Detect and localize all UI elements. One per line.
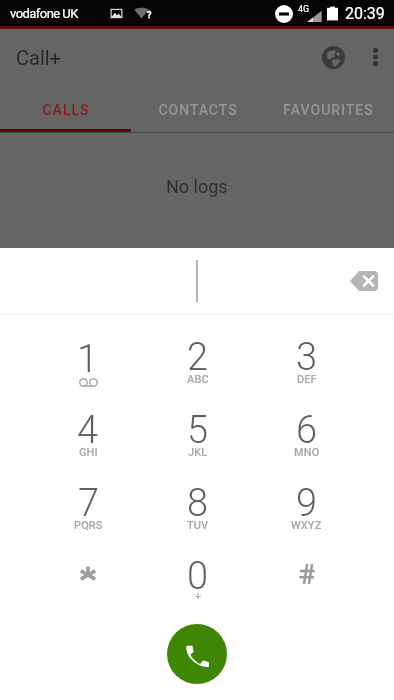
staticText: 5	[187, 408, 209, 453]
staticText: vodafone UK	[10, 6, 78, 21]
staticText: ?	[147, 10, 152, 21]
button[interactable]: 7	[33, 477, 143, 550]
staticText: 8	[187, 481, 209, 526]
staticText: 2	[187, 335, 209, 380]
button[interactable]: CONTACTS	[132, 91, 263, 129]
staticText: CONTACTS	[158, 102, 238, 118]
staticText: 20:39	[345, 4, 385, 23]
staticText: 1	[77, 337, 99, 382]
staticText: Call+	[16, 46, 61, 69]
staticText: 9	[296, 481, 318, 526]
staticText: WXYZ	[291, 519, 322, 532]
button[interactable]: 1	[33, 331, 143, 404]
button[interactable]: 0	[143, 550, 252, 623]
button[interactable]	[33, 550, 143, 623]
button[interactable]: FAVOURITES	[263, 91, 394, 129]
staticText: DEF	[297, 373, 317, 386]
staticText: 0	[187, 554, 209, 599]
button[interactable]: 2	[143, 331, 252, 404]
button[interactable]: CALLS	[0, 91, 132, 129]
button[interactable]: 8	[143, 477, 252, 550]
staticText: CALLS	[42, 102, 90, 118]
button[interactable]: More options	[356, 38, 394, 76]
button[interactable]: 6	[252, 404, 361, 477]
staticText: No logs	[166, 176, 228, 197]
button[interactable]: 9	[252, 477, 361, 550]
staticText: TUV	[187, 519, 209, 532]
staticText: PQRS	[74, 519, 103, 532]
staticText: 4G	[298, 4, 310, 15]
staticText: 7	[78, 481, 100, 526]
button[interactable]: Backspace	[342, 259, 386, 303]
staticText: JKL	[188, 446, 208, 459]
button[interactable]: 5	[143, 404, 252, 477]
button[interactable]	[252, 550, 361, 623]
button[interactable]: 4	[33, 404, 143, 477]
staticText: ABC	[187, 373, 209, 386]
staticText: FAVOURITES	[283, 102, 374, 118]
staticText: +	[195, 590, 202, 603]
staticText: 4	[77, 408, 99, 453]
button[interactable]: Call	[167, 624, 227, 684]
staticText: 3	[296, 335, 318, 380]
staticText: 6	[296, 408, 318, 453]
staticText: GHI	[79, 446, 98, 459]
button[interactable]: Change language	[310, 34, 356, 80]
staticText: MNO	[294, 446, 320, 459]
button[interactable]: 3	[252, 331, 361, 404]
